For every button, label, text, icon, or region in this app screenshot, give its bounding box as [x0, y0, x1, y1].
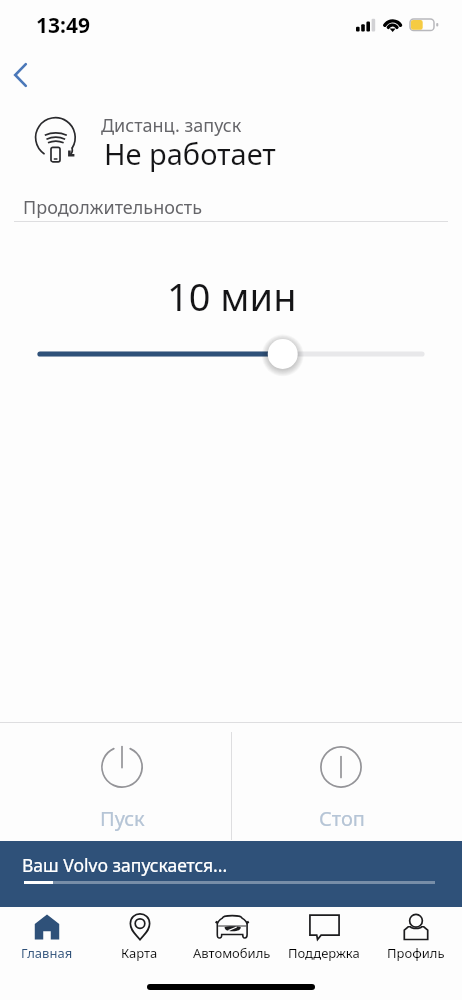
staticText: Продолжительность — [23, 195, 202, 220]
button[interactable]: Пуск — [0, 723, 230, 841]
staticText: Главная — [21, 944, 73, 962]
staticText: Стоп — [319, 805, 365, 832]
button[interactable]: Профиль — [370, 907, 462, 962]
button[interactable]: Поддержка — [278, 907, 370, 962]
button[interactable]: Стоп — [232, 723, 462, 841]
staticText: Автомобиль — [193, 944, 271, 962]
staticText: Не работает — [104, 134, 276, 173]
staticText: Пуск — [100, 805, 145, 832]
staticText: Карта — [121, 944, 158, 962]
button[interactable]: Back — [0, 53, 44, 97]
button[interactable]: Главная — [0, 907, 93, 962]
staticText: 13:49 — [36, 11, 90, 40]
staticText: Поддержка — [288, 944, 360, 962]
staticText: Профиль — [387, 944, 445, 962]
button[interactable]: Автомобиль — [186, 907, 278, 962]
staticText: 10 мин — [167, 270, 297, 322]
staticText: Ваш Volvo запускается... — [22, 853, 228, 877]
button[interactable]: Карта — [93, 907, 186, 962]
button[interactable]: Ваш Volvo запускается... — [0, 841, 462, 907]
staticText: Дистанц. запуск — [101, 113, 242, 138]
